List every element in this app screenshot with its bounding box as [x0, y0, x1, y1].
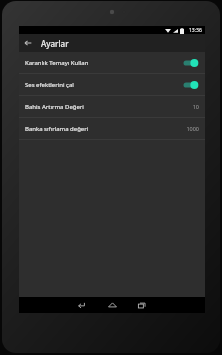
button[interactable]: Back — [67, 297, 97, 313]
button[interactable]: Ses efektlerini çal — [19, 74, 205, 95]
button[interactable]: Home — [97, 297, 127, 313]
staticText: Ses efektlerini çal — [25, 81, 182, 89]
button[interactable]: Toggle — [182, 58, 199, 68]
staticText: Bahis Artırma Değeri — [25, 103, 192, 111]
staticText: Banka sıfırlama değeri — [25, 125, 186, 133]
button[interactable]: Recent apps — [127, 297, 157, 313]
staticText: Karanlık Temayı Kullan — [25, 59, 182, 67]
staticText: 13:36 — [189, 27, 202, 34]
button[interactable]: Toggle — [182, 80, 199, 90]
staticText: 10 — [192, 103, 199, 110]
staticText: 1000 — [186, 125, 199, 132]
button[interactable]: Banka sıfırlama değeri — [19, 118, 205, 139]
button[interactable]: Bahis Artırma Değeri — [19, 96, 205, 117]
staticText: Ayarlar — [41, 38, 69, 49]
button[interactable]: Karanlık Temayı Kullan — [19, 52, 205, 73]
button[interactable]: Back — [19, 34, 37, 52]
